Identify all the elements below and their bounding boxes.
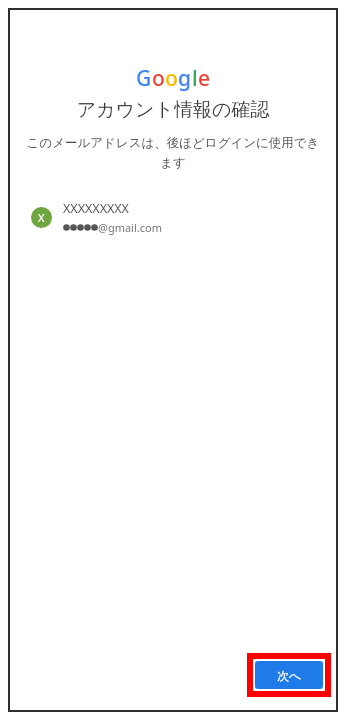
- staticText: o: [152, 64, 165, 93]
- button[interactable]: X: [10, 196, 336, 241]
- staticText: 次へ: [277, 668, 302, 683]
- staticText: このメールアドレスは、後ほどログインに使用できます: [22, 135, 324, 171]
- staticText: @gmail.com: [98, 220, 162, 235]
- staticText: g: [178, 64, 192, 93]
- button[interactable]: 次へ: [247, 653, 331, 697]
- staticText: XXXXXXXXX: [63, 200, 129, 217]
- staticText: e: [198, 64, 211, 93]
- staticText: アカウント情報の確認: [10, 98, 336, 122]
- staticText: X: [38, 210, 45, 225]
- staticText: o: [165, 64, 178, 93]
- staticText: G: [136, 64, 152, 93]
- staticText: l: [192, 64, 198, 93]
